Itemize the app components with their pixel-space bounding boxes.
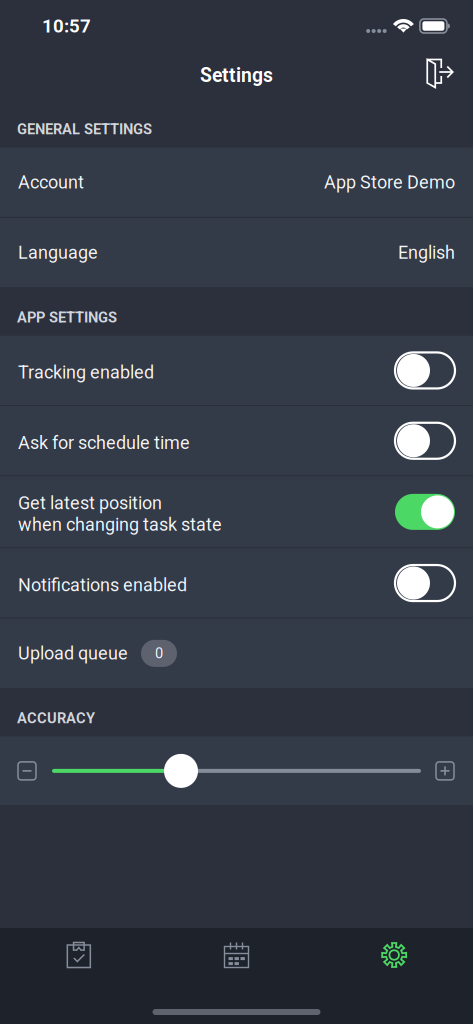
staticText: App Store Demo	[324, 172, 455, 193]
button[interactable]: Get latest position	[0, 476, 473, 547]
button[interactable]: Upload queue	[0, 619, 473, 688]
staticText: English	[398, 242, 455, 263]
staticText: Ask for schedule time	[18, 432, 190, 453]
staticText: GENERAL SETTINGS	[17, 121, 152, 138]
staticText: when changing task state	[18, 514, 222, 535]
staticText: 10:57	[42, 15, 91, 37]
staticText: Settings	[200, 64, 273, 87]
staticText: APP SETTINGS	[17, 309, 117, 326]
button[interactable]: Calendar	[158, 928, 315, 982]
button[interactable]: Tracking enabled	[0, 336, 473, 405]
button[interactable]: Settings	[315, 928, 473, 982]
button[interactable]: Tasks	[0, 928, 158, 982]
staticText: 0	[155, 645, 163, 662]
button[interactable]: Increase accuracy	[426, 749, 464, 793]
staticText: Account	[18, 172, 84, 193]
staticText: Language	[18, 242, 98, 263]
staticText: ACCURACY	[17, 710, 95, 727]
staticText: Tracking enabled	[18, 362, 154, 383]
staticText: Get latest position	[18, 493, 162, 514]
button[interactable]: Account	[0, 148, 473, 217]
staticText: Upload queue	[18, 643, 128, 664]
button[interactable]: Language	[0, 218, 473, 287]
button[interactable]: Notifications enabled	[0, 548, 473, 618]
button[interactable]: Decrease accuracy	[8, 749, 46, 793]
staticText: Notifications enabled	[18, 574, 187, 596]
button[interactable]: Log out	[417, 50, 463, 96]
button[interactable]: Ask for schedule time	[0, 406, 473, 475]
